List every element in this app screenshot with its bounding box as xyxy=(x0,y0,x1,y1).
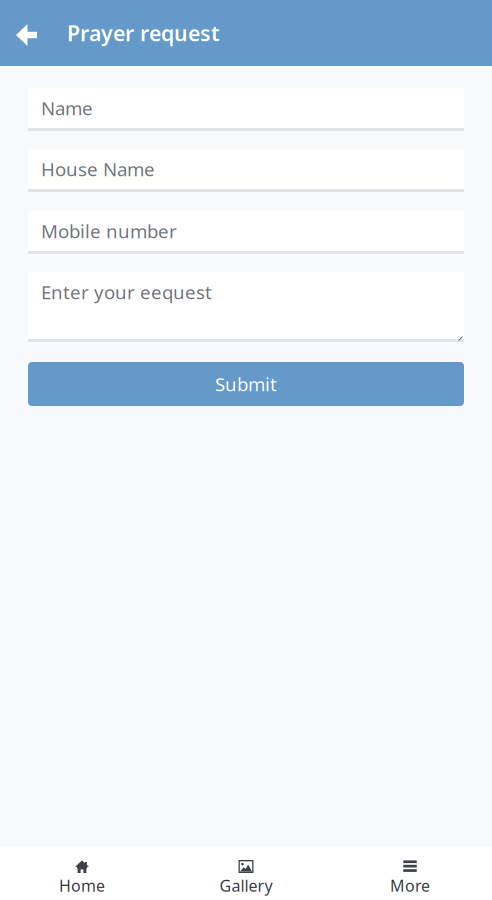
button[interactable]: Mobile number xyxy=(28,211,464,254)
button[interactable]: Submit xyxy=(28,362,464,406)
staticText: More xyxy=(390,875,430,896)
button[interactable]: Name xyxy=(28,88,464,131)
staticText: Mobile number xyxy=(41,219,177,243)
staticText: Gallery xyxy=(219,875,272,896)
staticText: House Name xyxy=(41,157,155,181)
button[interactable]: Enter your eequest xyxy=(28,272,464,342)
button[interactable]: Gallery xyxy=(164,846,328,900)
button[interactable]: Home xyxy=(0,846,164,900)
staticText: Home xyxy=(59,875,105,896)
staticText: Submit xyxy=(215,372,277,396)
button[interactable]: House Name xyxy=(28,149,464,192)
staticText: Prayer request xyxy=(67,19,220,47)
staticText: Enter your eequest xyxy=(41,280,212,304)
staticText: Name xyxy=(41,96,93,120)
button[interactable]: Back xyxy=(8,5,45,61)
button[interactable]: More xyxy=(328,846,492,900)
